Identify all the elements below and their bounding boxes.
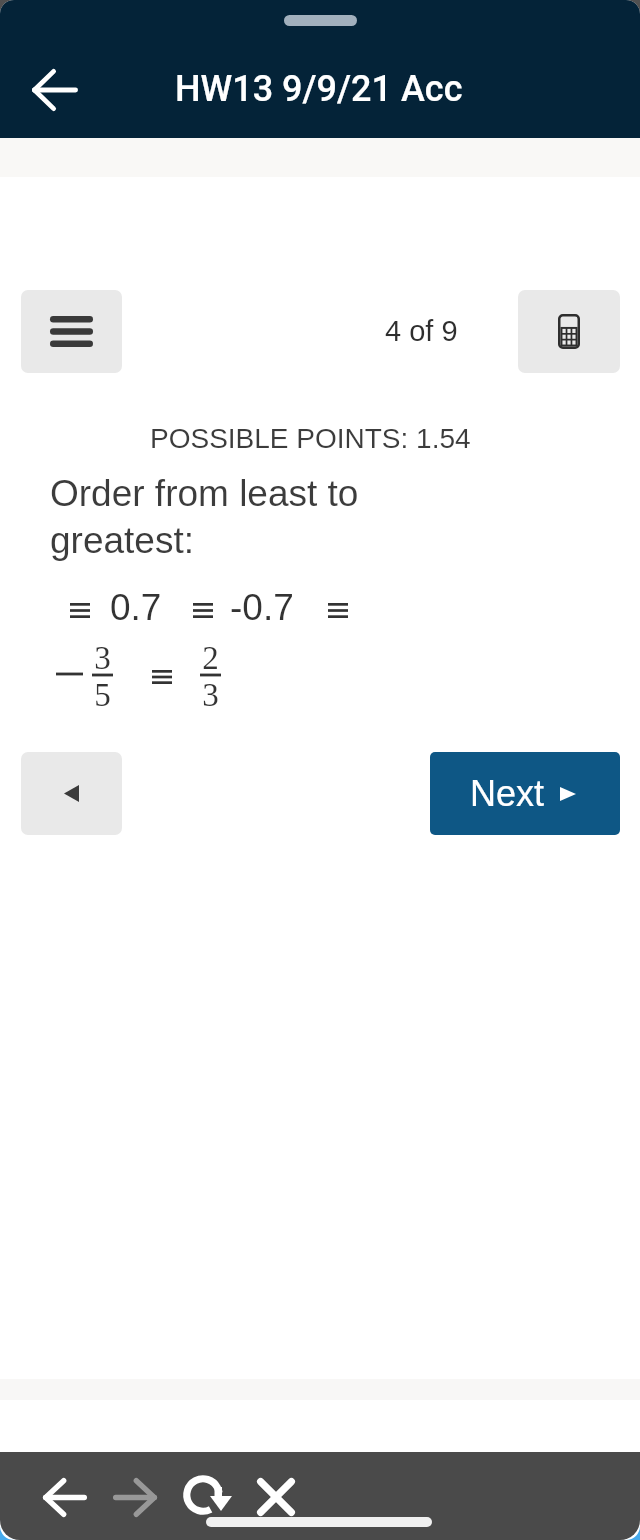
staticText: -0.7 [230,587,294,628]
button[interactable]: Stop [243,1466,309,1528]
staticText: POSSIBLE POINTS: 1.54 [150,423,471,454]
button[interactable]: Back [11,47,99,133]
staticText: 3 [94,640,111,677]
staticText: HW13 9/9/21 Acc [175,68,463,110]
staticText: 2 [202,640,219,677]
staticText: Order from least to [50,473,359,514]
button[interactable]: Next [430,752,620,835]
staticText: 0.7 [110,587,162,628]
button[interactable]: Menu [21,290,122,373]
button[interactable]: Browser back [32,1466,98,1528]
staticText: 3 [202,677,219,714]
staticText: 4 of 9 [385,315,458,347]
button[interactable]: Reload [174,1464,242,1526]
button[interactable]: Previous [21,752,122,835]
staticText: greatest: [50,520,194,561]
button[interactable]: Calculator [518,290,620,373]
staticText: 5 [94,677,111,714]
staticText: Next [470,773,545,813]
button[interactable]: Browser forward [102,1466,168,1528]
